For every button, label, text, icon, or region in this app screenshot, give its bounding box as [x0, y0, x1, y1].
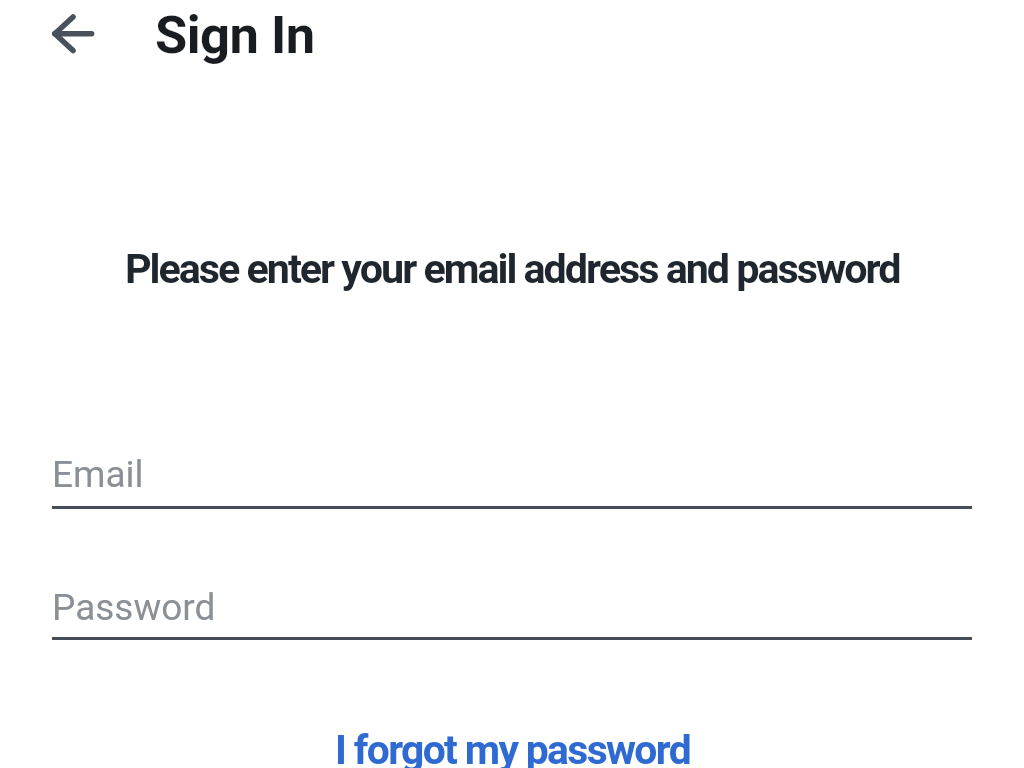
staticText: Email [52, 453, 144, 496]
staticText: I forgot my password [335, 726, 690, 768]
button[interactable]: Email [52, 430, 972, 509]
staticText: Please enter your email address and pass… [125, 245, 900, 293]
staticText: Password [52, 586, 216, 629]
button[interactable] [38, 4, 108, 64]
button[interactable]: Password [52, 560, 972, 640]
staticText: Sign In [155, 4, 315, 66]
button[interactable]: I forgot my password [335, 726, 690, 768]
